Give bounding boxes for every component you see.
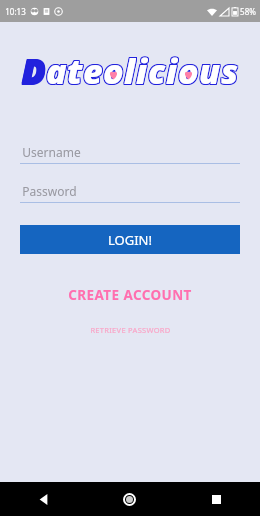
staticText: o	[104, 49, 125, 93]
button[interactable]: Username	[20, 140, 240, 164]
staticText: D	[22, 49, 46, 93]
staticText: i	[136, 49, 148, 93]
staticText: i	[166, 49, 178, 93]
staticText: Username	[22, 144, 81, 160]
staticText: o	[177, 47, 198, 91]
staticText: s	[221, 49, 239, 93]
staticText: a	[45, 49, 66, 93]
button[interactable]: Password	[20, 179, 240, 203]
staticText: s	[221, 47, 239, 91]
staticText: s	[221, 48, 239, 92]
staticText: c	[149, 48, 167, 92]
staticText: D	[23, 49, 47, 93]
staticText: Password	[22, 183, 77, 199]
staticText: o	[104, 47, 125, 91]
staticText: a	[45, 47, 66, 91]
staticText: D	[22, 47, 46, 91]
staticText: c	[149, 47, 167, 91]
staticText: e	[82, 49, 102, 93]
staticText: u	[198, 47, 220, 91]
staticText: t	[66, 48, 82, 92]
staticText: D	[23, 48, 47, 92]
staticText: l	[125, 47, 137, 91]
staticText: a	[46, 49, 67, 93]
staticText: i	[135, 48, 147, 92]
staticText: e	[84, 48, 104, 92]
staticText: u	[198, 49, 220, 93]
staticText: t	[66, 47, 82, 91]
staticText: i	[167, 48, 179, 92]
staticText: t	[68, 48, 84, 92]
staticText: a	[46, 47, 67, 91]
staticText: c	[149, 49, 167, 93]
staticText: i	[165, 48, 177, 92]
staticText: e	[83, 47, 103, 91]
staticText: i	[137, 47, 149, 91]
staticText: i	[137, 49, 149, 93]
staticText: i	[135, 47, 147, 91]
staticText: l	[124, 48, 136, 92]
staticText: t	[68, 47, 84, 91]
staticText: c	[148, 47, 166, 91]
staticText: u	[199, 49, 221, 93]
staticText: s	[222, 49, 240, 93]
staticText: o	[178, 49, 199, 93]
staticText: c	[148, 48, 166, 92]
button[interactable]: Home	[86, 482, 173, 516]
staticText: e	[83, 49, 103, 93]
staticText: a	[47, 49, 68, 93]
staticText: D	[23, 47, 47, 91]
staticText: o	[102, 49, 123, 93]
staticText: i	[137, 48, 149, 92]
staticText: o	[104, 48, 125, 92]
staticText: RETRIEVE PASSWORD	[90, 325, 171, 335]
staticText: i	[167, 47, 179, 91]
button[interactable]: LOGIN!	[20, 225, 240, 254]
staticText: D	[21, 47, 45, 91]
staticText: a	[47, 47, 68, 91]
staticText: o	[177, 49, 198, 93]
staticText: i	[167, 49, 179, 93]
staticText: c	[148, 49, 166, 93]
staticText: o	[177, 48, 198, 92]
staticText: o	[179, 48, 200, 92]
staticText: e	[83, 48, 103, 92]
staticText: u	[199, 47, 221, 91]
staticText: CREATE ACCOUNT	[68, 286, 192, 304]
staticText: LOGIN!	[108, 231, 152, 249]
staticText: a	[45, 48, 66, 92]
staticText: l	[125, 49, 137, 93]
staticText: o	[179, 49, 200, 93]
staticText: t	[68, 49, 84, 93]
staticText: t	[67, 49, 83, 93]
staticText: s	[222, 47, 240, 91]
staticText: s	[220, 47, 238, 91]
staticText: u	[199, 48, 221, 92]
staticText: D	[22, 48, 46, 92]
staticText: i	[166, 47, 178, 91]
staticText: a	[47, 48, 68, 92]
staticText: l	[123, 47, 135, 91]
staticText: t	[67, 47, 83, 91]
staticText: l	[124, 49, 136, 93]
staticText: u	[200, 47, 222, 91]
button[interactable]: Recent apps	[173, 482, 260, 516]
staticText: o	[103, 47, 124, 91]
staticText: o	[102, 48, 123, 92]
button[interactable]: RETRIEVE PASSWORD	[0, 321, 260, 339]
staticText: s	[222, 48, 240, 92]
staticText: i	[135, 49, 147, 93]
button[interactable]: CREATE ACCOUNT	[0, 283, 260, 307]
staticText: t	[66, 49, 82, 93]
staticText: i	[165, 49, 177, 93]
staticText: e	[84, 47, 104, 91]
staticText: D	[21, 49, 45, 93]
button[interactable]: Back	[0, 482, 86, 516]
staticText: o	[178, 48, 199, 92]
staticText: l	[123, 49, 135, 93]
staticText: c	[147, 48, 165, 92]
staticText: s	[220, 48, 238, 92]
staticText: e	[82, 48, 102, 92]
staticText: c	[147, 47, 165, 91]
staticText: s	[220, 49, 238, 93]
